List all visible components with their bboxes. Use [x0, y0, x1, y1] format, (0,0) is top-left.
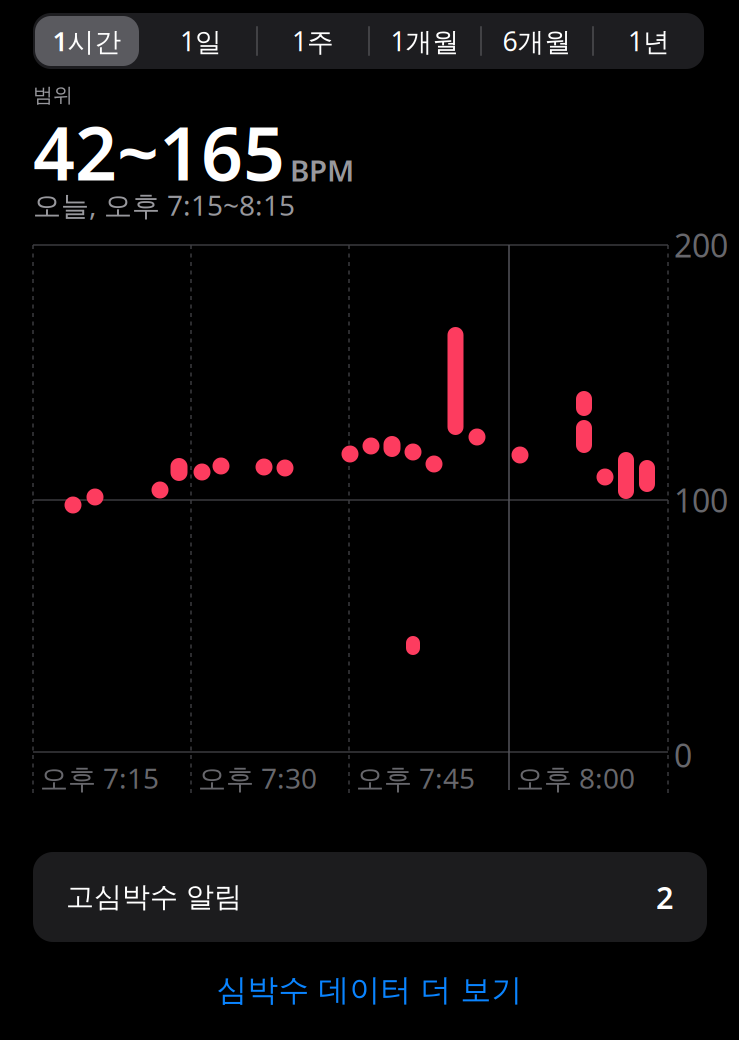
staticText: 범위: [33, 83, 73, 107]
button[interactable]: 1개월: [369, 13, 481, 69]
button[interactable]: 1년: [593, 13, 705, 69]
button[interactable]: 심박수 데이터 더 보기: [216, 971, 522, 1009]
staticText: 오후 8:00: [516, 759, 635, 797]
staticText: BPM: [290, 151, 354, 190]
staticText: 100: [674, 479, 728, 521]
staticText: 고심박수 알림: [66, 880, 242, 914]
button[interactable]: 1주: [257, 13, 369, 69]
staticText: 1개월: [390, 23, 459, 59]
staticText: 오후 7:15: [40, 759, 159, 797]
staticText: 1주: [292, 23, 334, 59]
button[interactable]: 고심박수 알림: [33, 852, 707, 942]
staticText: 1년: [628, 23, 670, 59]
staticText: 6개월: [502, 23, 571, 59]
button[interactable]: 1시간: [31, 13, 143, 69]
staticText: 오후 7:30: [198, 759, 317, 797]
staticText: 2: [656, 877, 674, 917]
button[interactable]: 6개월: [481, 13, 593, 69]
staticText: 1시간: [52, 23, 121, 59]
staticText: 200: [674, 224, 728, 266]
staticText: 오후 7:45: [356, 759, 475, 797]
staticText: 42~165: [33, 103, 285, 201]
staticText: 심박수 데이터 더 보기: [216, 971, 522, 1009]
button[interactable]: 1일: [145, 13, 257, 69]
staticText: 오늘, 오후 7:15~8:15: [33, 186, 295, 224]
staticText: 1일: [180, 23, 222, 59]
staticText: 0: [674, 734, 692, 776]
